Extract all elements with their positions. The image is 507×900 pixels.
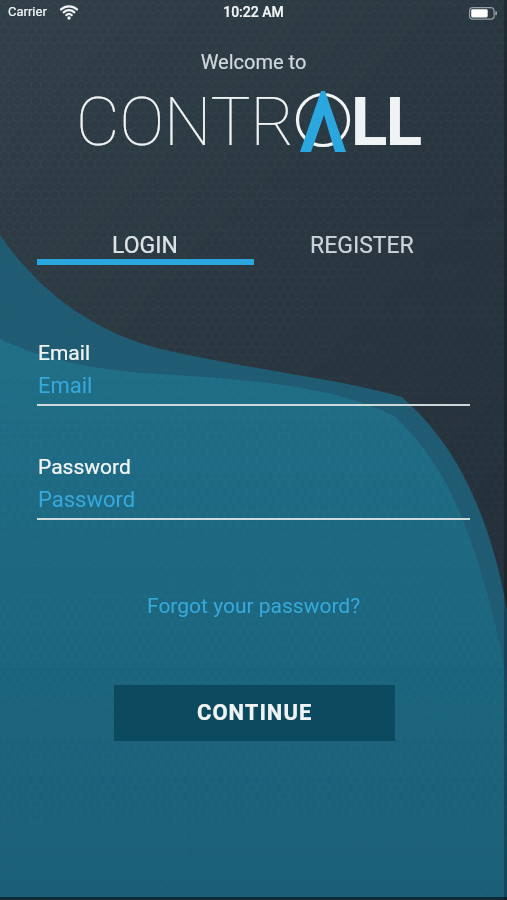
staticText: CONTR <box>76 83 295 162</box>
staticText: LL <box>351 83 421 162</box>
staticText: Welcome to <box>0 50 507 73</box>
staticText: Password <box>38 487 136 513</box>
staticText: CONTINUE <box>197 700 313 726</box>
staticText: LOGIN <box>112 232 178 259</box>
staticText: Forgot your password? <box>147 594 361 619</box>
staticText: 10:22 AM <box>0 4 507 20</box>
button[interactable]: CONTINUE <box>114 685 395 741</box>
button[interactable]: Forgot your password? <box>147 594 361 619</box>
button[interactable]: Email <box>37 373 470 406</box>
staticText: REGISTER <box>310 232 414 259</box>
staticText: Email <box>38 341 90 366</box>
button[interactable]: Password <box>37 487 470 520</box>
staticText: Carrier <box>8 4 47 19</box>
staticText: Password <box>38 455 131 480</box>
button[interactable]: LOGIN <box>37 232 253 266</box>
staticText: Email <box>38 373 93 399</box>
button[interactable]: REGISTER <box>253 232 470 266</box>
